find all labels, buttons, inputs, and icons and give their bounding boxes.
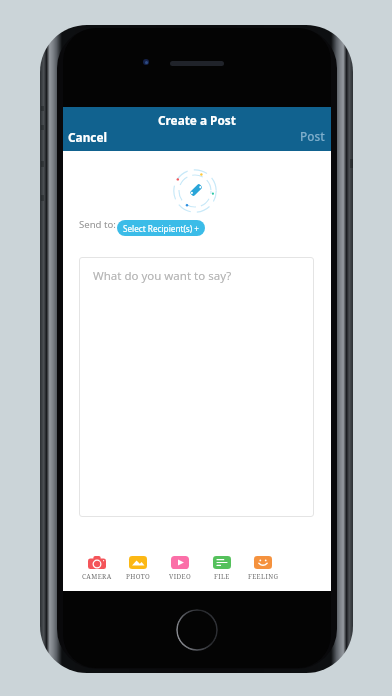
button[interactable]: Post xyxy=(291,125,331,151)
staticText: Create a Post xyxy=(158,112,236,128)
staticText: FEELING xyxy=(248,572,279,581)
staticText: Cancel xyxy=(68,129,107,145)
button[interactable]: Cancel xyxy=(63,125,116,151)
button[interactable]: Home xyxy=(176,609,218,651)
staticText: CAMERA xyxy=(82,572,112,581)
staticText: FILE xyxy=(214,572,230,581)
button[interactable]: VIDEO xyxy=(160,556,200,581)
button[interactable]: FEELING xyxy=(243,556,283,581)
button[interactable]: PHOTO xyxy=(118,556,158,581)
button[interactable]: CAMERA xyxy=(77,556,117,581)
staticText: Post xyxy=(300,128,325,144)
button[interactable]: Select Recipient(s) + xyxy=(117,220,205,236)
staticText: Send to: xyxy=(79,218,116,231)
staticText: What do you want to say? xyxy=(93,268,232,284)
staticText: Select Recipient(s) + xyxy=(123,223,200,234)
button[interactable]: FILE xyxy=(202,556,242,581)
staticText: VIDEO xyxy=(169,572,192,581)
staticText: PHOTO xyxy=(126,572,151,581)
button[interactable]: What do you want to say? xyxy=(79,257,314,517)
